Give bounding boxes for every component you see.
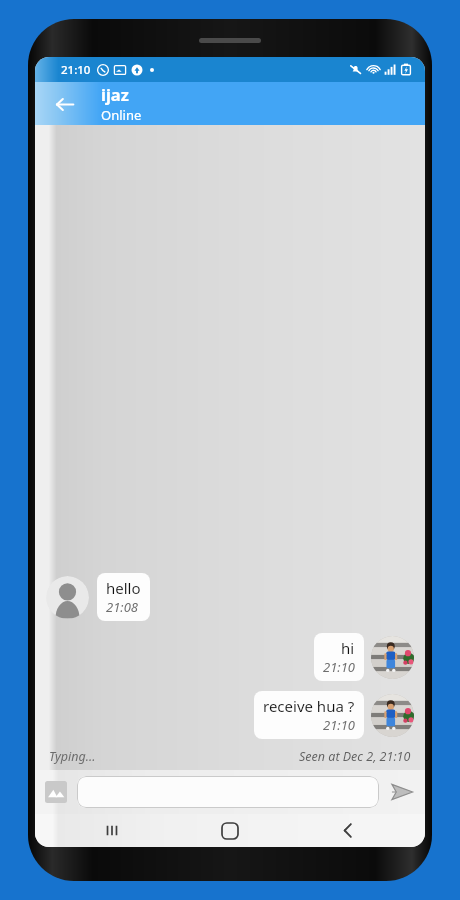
button[interactable]: receive hua ? bbox=[254, 691, 364, 739]
button[interactable]: Back bbox=[45, 85, 83, 123]
button[interactable]: Message input bbox=[77, 776, 379, 808]
staticText: ijaz bbox=[101, 83, 129, 105]
staticText: 21:10 bbox=[323, 716, 355, 734]
button[interactable]: Attach image bbox=[41, 777, 71, 807]
button[interactable]: Your avatar bbox=[371, 636, 414, 679]
staticText: Typing... bbox=[49, 748, 96, 765]
staticText: 21:10 bbox=[61, 62, 91, 78]
staticText: receive hua ? bbox=[263, 696, 355, 716]
button[interactable]: hi bbox=[314, 633, 364, 681]
button[interactable]: Send bbox=[385, 775, 419, 809]
button[interactable]: Your avatar bbox=[371, 694, 414, 737]
staticText: 21:10 bbox=[323, 658, 355, 676]
button[interactable]: Back bbox=[289, 814, 407, 847]
button[interactable]: Contact avatar bbox=[46, 576, 89, 619]
staticText: Seen at Dec 2, 21:10 bbox=[299, 748, 411, 765]
button[interactable]: hello bbox=[97, 573, 150, 621]
staticText: hi bbox=[341, 638, 355, 658]
staticText: hello bbox=[106, 578, 141, 598]
button[interactable]: Recents bbox=[53, 814, 171, 847]
button[interactable]: ijaz bbox=[101, 83, 142, 124]
button[interactable]: Home bbox=[171, 814, 289, 847]
staticText: 21:08 bbox=[106, 598, 138, 616]
staticText: Online bbox=[101, 106, 142, 124]
